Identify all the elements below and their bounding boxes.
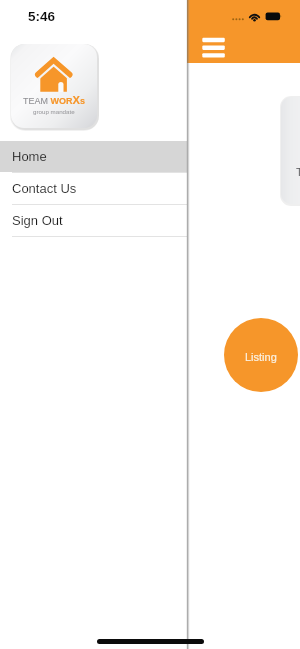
staticText: Home (12, 149, 47, 164)
staticText: Contact Us (12, 181, 77, 196)
button[interactable]: Home (0, 141, 187, 172)
staticText: TEAM WORXs (23, 94, 85, 107)
button[interactable]: Listing (224, 318, 298, 392)
button[interactable]: T (281, 97, 300, 204)
button[interactable]: Contact Us (0, 173, 187, 204)
staticText: 5:46 (28, 9, 56, 24)
staticText: Listing (245, 351, 277, 363)
staticText: Sign Out (12, 213, 63, 228)
button[interactable]: Open navigation menu (196, 31, 230, 64)
button[interactable]: Sign Out (0, 205, 187, 236)
staticText: T (296, 166, 300, 178)
staticText: group mandate (33, 108, 75, 115)
